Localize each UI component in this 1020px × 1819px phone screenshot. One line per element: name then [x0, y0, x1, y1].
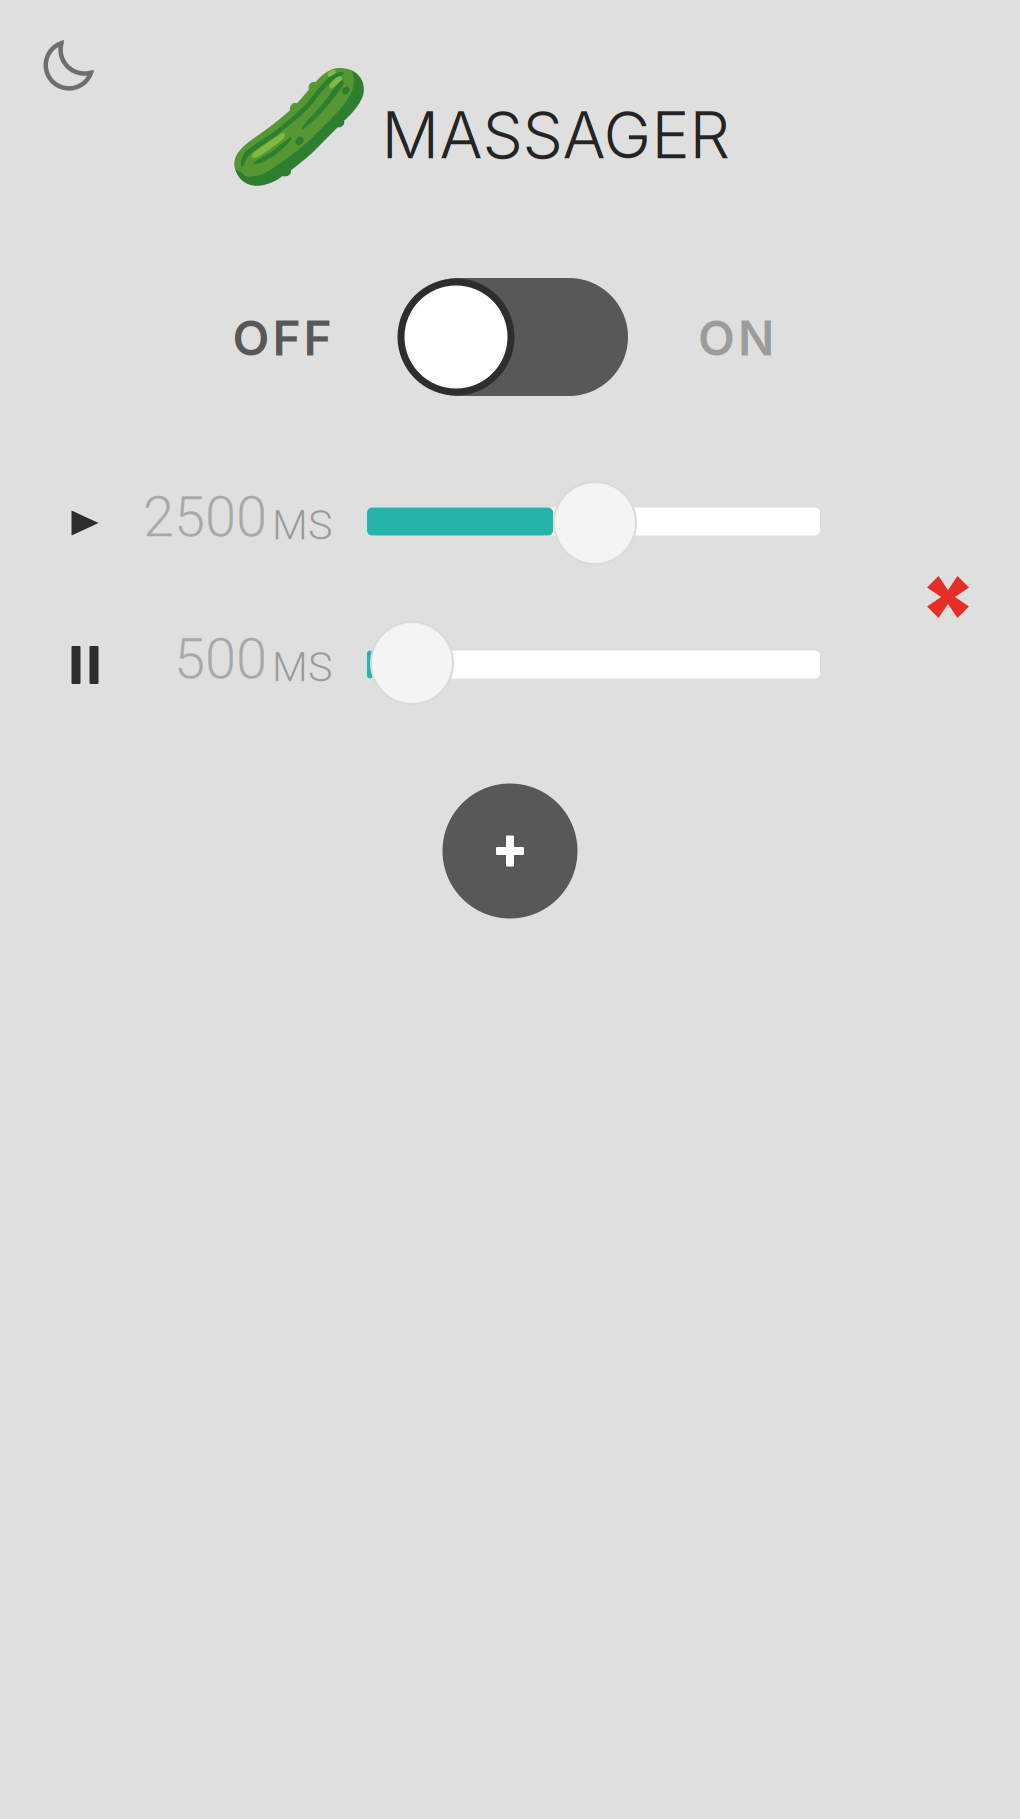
button[interactable]: Add step — [442, 783, 577, 918]
staticText: 🥒 — [226, 58, 372, 196]
staticText: 2500 — [143, 484, 267, 550]
staticText: 500 — [174, 626, 267, 692]
staticText: OFF — [232, 309, 331, 367]
button[interactable]: Toggle dark mode — [27, 22, 111, 106]
button[interactable]: Stop — [912, 561, 984, 633]
staticText: ON — [698, 309, 774, 367]
button[interactable]: Power switch, off — [400, 278, 628, 396]
staticText: MASSAGER — [381, 96, 730, 174]
staticText: MS — [272, 643, 333, 691]
staticText: MS — [272, 501, 333, 549]
